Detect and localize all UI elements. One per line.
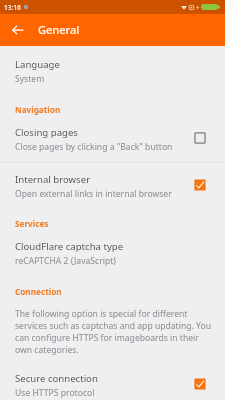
staticText: General <box>38 22 80 37</box>
button[interactable]: CloudFlare captcha type <box>0 238 225 269</box>
staticText: The following option is special for diff… <box>15 308 213 356</box>
staticText: Language <box>15 58 60 71</box>
button[interactable]: Internal browser <box>0 171 225 202</box>
staticText: Open external links in internal browser <box>15 188 172 200</box>
staticText: Internal browser <box>15 173 91 186</box>
staticText: Navigation <box>15 104 61 115</box>
button[interactable]: Navigate up <box>6 18 29 41</box>
staticText: Close pages by clicking a "Back" button <box>15 141 173 153</box>
button[interactable]: Closing pages <box>0 124 225 155</box>
button[interactable]: Language <box>0 56 225 87</box>
staticText: Secure connection <box>15 372 98 385</box>
button[interactable]: Secure connection <box>0 370 225 400</box>
staticText: Services <box>15 218 49 229</box>
staticText: CloudFlare captcha type <box>15 240 124 253</box>
staticText: 13:16 <box>4 3 21 12</box>
staticText: Connection <box>15 286 62 297</box>
staticText: System <box>15 73 45 85</box>
staticText: Closing pages <box>15 126 78 139</box>
staticText: reCAPTCHA 2 (JavaScript) <box>15 255 116 267</box>
staticText: Use HTTPS protocol <box>15 387 95 399</box>
